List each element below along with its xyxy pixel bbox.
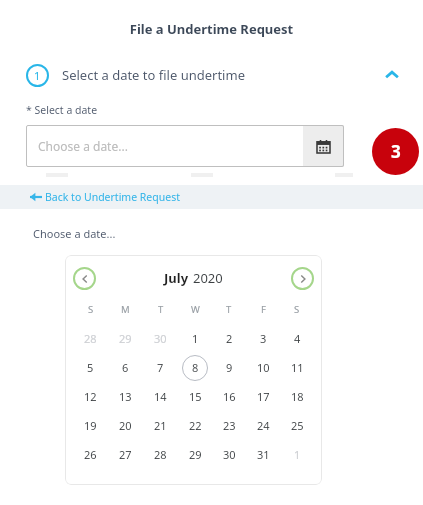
button[interactable]: 30	[143, 324, 178, 353]
staticText: 28	[154, 447, 167, 462]
staticText: S	[88, 303, 94, 316]
button[interactable]: 3	[246, 324, 280, 353]
button[interactable]: Back to Undertime Request	[0, 185, 423, 209]
button[interactable]: 28	[73, 324, 108, 353]
staticText: 4	[294, 331, 301, 346]
staticText: 30	[154, 331, 167, 346]
staticText: F	[261, 303, 266, 316]
staticText: 8	[192, 360, 199, 375]
button[interactable]: 11	[280, 353, 314, 382]
staticText: File a Undertime Request	[0, 20, 423, 38]
staticText: 25	[291, 418, 304, 433]
button[interactable]: 23	[212, 411, 246, 440]
button[interactable]: 10	[246, 353, 280, 382]
button[interactable]: 5	[73, 353, 108, 382]
button[interactable]: 29	[178, 440, 212, 469]
button[interactable]: 9	[212, 353, 246, 382]
button[interactable]: 26	[73, 440, 108, 469]
button[interactable]: 20	[108, 411, 143, 440]
button[interactable]: 4	[280, 324, 314, 353]
staticText: 24	[257, 418, 270, 433]
staticText: July	[164, 269, 189, 287]
button[interactable]: Previous month	[73, 267, 96, 290]
staticText: 30	[223, 447, 236, 462]
staticText: M	[121, 303, 130, 316]
staticText: 3	[260, 331, 267, 346]
button[interactable]: 27	[108, 440, 143, 469]
staticText: 13	[119, 389, 132, 404]
staticText: 27	[119, 447, 132, 462]
button[interactable]: 22	[178, 411, 212, 440]
button[interactable]: 12	[73, 382, 108, 411]
staticText: 29	[189, 447, 202, 462]
staticText: 31	[257, 447, 270, 462]
button[interactable]: 28	[143, 440, 178, 469]
button[interactable]: 17	[246, 382, 280, 411]
staticText: Choose a date...	[33, 226, 116, 241]
staticText: Choose a date...	[38, 138, 128, 154]
staticText: 5	[87, 360, 94, 375]
staticText: 6	[122, 360, 129, 375]
staticText: 9	[226, 360, 233, 375]
button[interactable]: 2	[212, 324, 246, 353]
button[interactable]: Step 3 badge	[372, 128, 419, 175]
staticText: S	[294, 303, 300, 316]
staticText: 1	[192, 331, 199, 346]
button[interactable]: 29	[108, 324, 143, 353]
staticText: * Select a date	[26, 103, 98, 117]
button[interactable]: 19	[73, 411, 108, 440]
staticText: 10	[257, 360, 270, 375]
button[interactable]: 8	[178, 353, 212, 382]
button[interactable]: 16	[212, 382, 246, 411]
staticText: Back to Undertime Request	[45, 190, 180, 204]
staticText: 1	[294, 447, 301, 462]
staticText: 19	[84, 418, 97, 433]
staticText: T	[226, 303, 232, 316]
staticText: 28	[84, 331, 97, 346]
button[interactable]: 30	[212, 440, 246, 469]
other: Collapse section	[381, 64, 403, 86]
button[interactable]: 1	[0, 59, 423, 91]
button[interactable]: Choose a date...	[26, 125, 344, 167]
staticText: 7	[157, 360, 164, 375]
button[interactable]: Next month	[291, 267, 314, 290]
staticText: 20	[119, 418, 132, 433]
staticText: 23	[223, 418, 236, 433]
button[interactable]: Open calendar	[303, 125, 344, 167]
staticText: 21	[154, 418, 167, 433]
button[interactable]: 7	[143, 353, 178, 382]
staticText: 18	[291, 389, 304, 404]
staticText: 2020	[193, 269, 223, 287]
button[interactable]: 24	[246, 411, 280, 440]
button[interactable]: 31	[246, 440, 280, 469]
button[interactable]: 21	[143, 411, 178, 440]
button[interactable]: 18	[280, 382, 314, 411]
button[interactable]: 25	[280, 411, 314, 440]
staticText: 26	[84, 447, 97, 462]
staticText: 2	[226, 331, 233, 346]
staticText: 11	[291, 360, 304, 375]
button[interactable]: 1	[178, 324, 212, 353]
staticText: W	[191, 303, 200, 316]
button[interactable]: 6	[108, 353, 143, 382]
staticText: 14	[154, 389, 167, 404]
staticText: 22	[189, 418, 202, 433]
button[interactable]: 1	[280, 440, 314, 469]
staticText: 1	[34, 68, 41, 83]
button[interactable]: 13	[108, 382, 143, 411]
staticText: 16	[223, 389, 236, 404]
button[interactable]: 15	[178, 382, 212, 411]
staticText: 29	[119, 331, 132, 346]
staticText: T	[158, 303, 164, 316]
staticText: 3	[391, 140, 401, 163]
staticText: 17	[257, 389, 270, 404]
staticText: 12	[84, 389, 97, 404]
staticText: Select a date to file undertime	[62, 66, 245, 84]
button[interactable]: 14	[143, 382, 178, 411]
staticText: 15	[189, 389, 202, 404]
